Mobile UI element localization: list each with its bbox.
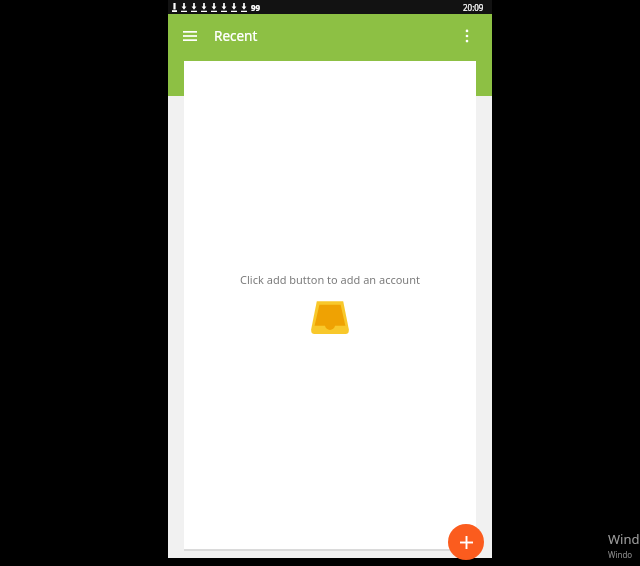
button[interactable]: More options (445, 14, 489, 58)
staticText: Windo (608, 549, 633, 560)
staticText: Click add button to add an account (240, 272, 420, 287)
staticText: 20:09 (463, 2, 484, 13)
staticText: 99 (251, 2, 261, 13)
button[interactable]: Add account (448, 524, 484, 560)
button[interactable]: Open navigation drawer (168, 14, 212, 58)
staticText: Recent (214, 27, 258, 45)
staticText: Wind (608, 530, 640, 548)
